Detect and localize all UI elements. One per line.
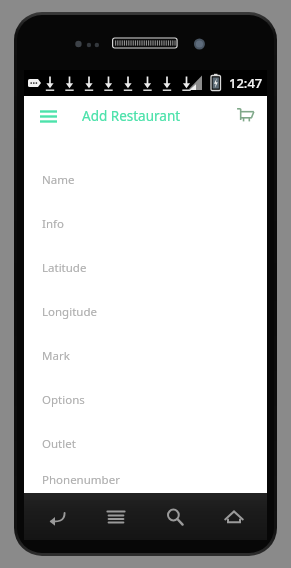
button[interactable]: Outlet xyxy=(24,422,267,466)
button[interactable]: Recent apps xyxy=(90,493,142,540)
staticText: Phonenumber xyxy=(42,472,120,488)
button[interactable]: Home xyxy=(208,493,260,540)
button[interactable]: Back xyxy=(31,493,83,540)
staticText: Info xyxy=(42,216,64,232)
staticText: Latitude xyxy=(42,260,87,276)
button[interactable]: Latitude xyxy=(24,246,267,290)
button[interactable]: Name xyxy=(24,158,267,202)
staticText: Options xyxy=(42,392,85,408)
button[interactable]: Phonenumber xyxy=(24,466,267,493)
button[interactable]: Cart xyxy=(231,102,259,130)
button[interactable]: Info xyxy=(24,202,267,246)
button[interactable]: Options xyxy=(24,378,267,422)
button[interactable]: Open navigation menu xyxy=(35,103,61,129)
button[interactable]: Longitude xyxy=(24,290,267,334)
staticText: Add Restaurant xyxy=(82,107,181,125)
staticText: Longitude xyxy=(42,304,97,320)
staticText: Name xyxy=(42,172,75,188)
staticText: 12:47 xyxy=(229,74,263,92)
staticText: Outlet xyxy=(42,436,76,452)
staticText: Mark xyxy=(42,348,70,364)
button[interactable]: Mark xyxy=(24,334,267,378)
button[interactable]: Search xyxy=(149,493,201,540)
